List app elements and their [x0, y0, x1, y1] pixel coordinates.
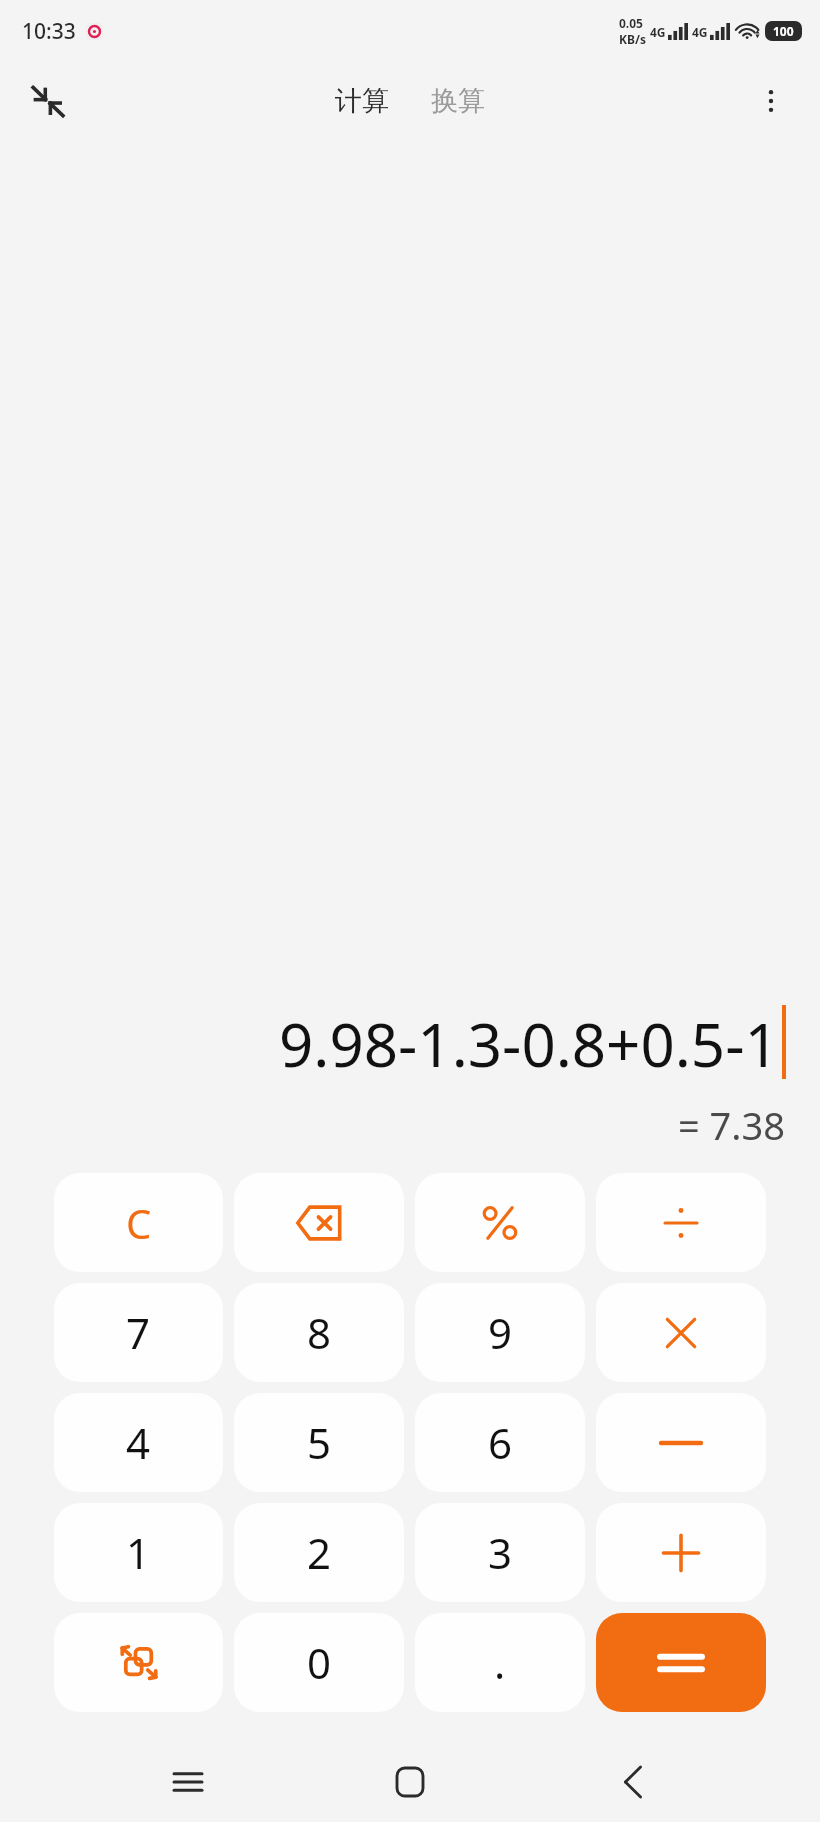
button[interactable]: 8: [234, 1283, 404, 1382]
staticText: 7: [126, 1304, 151, 1361]
staticText: 0: [307, 1634, 332, 1691]
button[interactable]: 7: [54, 1283, 223, 1382]
staticText: 100: [773, 23, 794, 39]
staticText: 4: [126, 1414, 151, 1471]
button[interactable]: Equals: [596, 1613, 766, 1712]
button[interactable]: .: [415, 1613, 585, 1712]
button[interactable]: 3: [415, 1503, 585, 1602]
staticText: 9: [488, 1304, 513, 1361]
staticText: KB/s: [619, 31, 646, 47]
button[interactable]: More options: [744, 74, 798, 128]
staticText: 3: [488, 1524, 513, 1581]
button[interactable]: 2: [234, 1503, 404, 1602]
staticText: = 7.38: [678, 1099, 786, 1151]
button[interactable]: 1: [54, 1503, 223, 1602]
button[interactable]: Home: [375, 1747, 445, 1817]
button[interactable]: 换算: [423, 78, 493, 124]
button[interactable]: Divide: [596, 1173, 766, 1272]
button[interactable]: 9: [415, 1283, 585, 1382]
button[interactable]: Back: [598, 1747, 668, 1817]
button[interactable]: Percent: [415, 1173, 585, 1272]
staticText: .: [494, 1634, 506, 1691]
staticText: 0.05: [619, 15, 643, 31]
button[interactable]: 5: [234, 1393, 404, 1492]
staticText: C: [126, 1196, 152, 1250]
staticText: 6: [488, 1414, 513, 1471]
button[interactable]: 0: [234, 1613, 404, 1712]
staticText: 4G: [692, 24, 708, 40]
staticText: 4G: [650, 24, 666, 40]
button[interactable]: Multiply: [596, 1283, 766, 1382]
button[interactable]: Minus: [596, 1393, 766, 1492]
staticText: 换算: [431, 84, 485, 118]
staticText: 1: [126, 1524, 151, 1581]
staticText: 10:33: [22, 17, 76, 46]
staticText: 9.98-1.3-0.8+0.5-1: [279, 1003, 779, 1085]
button[interactable]: Backspace: [234, 1173, 404, 1272]
button[interactable]: 6: [415, 1393, 585, 1492]
button[interactable]: 4: [54, 1393, 223, 1492]
staticText: 8: [307, 1304, 332, 1361]
button[interactable]: Unit conversion: [54, 1613, 223, 1712]
staticText: 计算: [335, 84, 389, 118]
button[interactable]: Plus: [596, 1503, 766, 1602]
staticText: 5: [307, 1414, 332, 1471]
staticText: 2: [307, 1524, 332, 1581]
button[interactable]: Collapse: [20, 73, 76, 129]
button[interactable]: Recent apps: [153, 1747, 223, 1817]
button[interactable]: 计算: [327, 78, 397, 124]
button[interactable]: Clear: [54, 1173, 223, 1272]
